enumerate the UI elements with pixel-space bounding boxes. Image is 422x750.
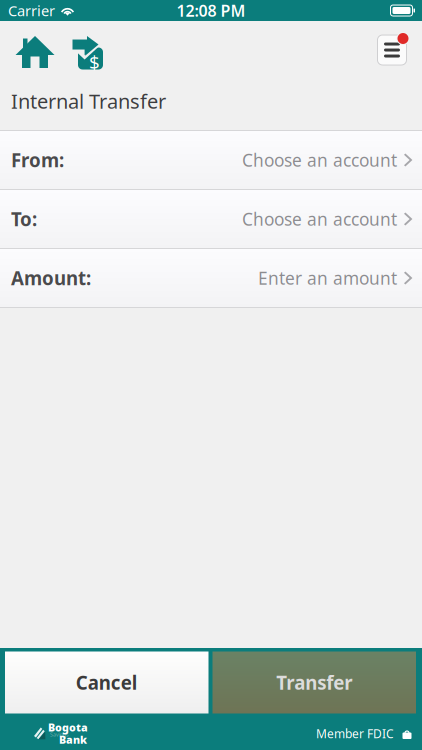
staticText: Choose an account xyxy=(242,148,397,171)
staticText: Choose an account xyxy=(242,207,397,230)
staticText: Bogota xyxy=(48,720,88,734)
button[interactable]: Transfer xyxy=(54,23,105,69)
button[interactable]: From: xyxy=(0,131,422,189)
staticText: Bank xyxy=(59,732,87,747)
staticText: Amount: xyxy=(11,266,91,290)
staticText: Member FDIC xyxy=(316,725,394,741)
staticText: Enter an amount xyxy=(258,266,397,289)
button[interactable]: Cancel xyxy=(5,651,208,713)
button[interactable]: Home xyxy=(0,23,54,69)
staticText: Savings xyxy=(50,731,69,738)
staticText: Carrier xyxy=(8,1,55,20)
staticText: Cancel xyxy=(76,670,138,695)
staticText: 12:08 PM xyxy=(176,0,245,21)
staticText: $ xyxy=(89,49,100,74)
staticText: To: xyxy=(11,207,37,231)
button[interactable]: Menu xyxy=(376,30,411,66)
staticText: Internal Transfer xyxy=(11,88,166,114)
staticText: Transfer xyxy=(276,670,352,695)
staticText: From: xyxy=(11,148,64,172)
button[interactable]: Transfer xyxy=(212,651,416,713)
button[interactable]: To: xyxy=(0,190,422,248)
button[interactable]: Amount: xyxy=(0,249,422,307)
